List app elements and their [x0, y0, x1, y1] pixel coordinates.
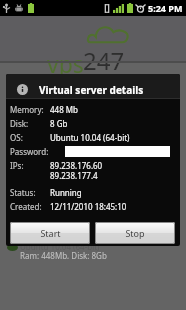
- staticText: Stop: [125, 227, 145, 239]
- staticText: Virtual server details: [39, 83, 144, 97]
- staticText: Ubuntu 10.04 (64-bit): [50, 132, 130, 143]
- button[interactable]: Stop: [95, 222, 175, 244]
- staticText: 247: [83, 44, 125, 77]
- staticText: Running: [50, 187, 82, 198]
- staticText: 448 Mb: [50, 104, 78, 115]
- staticText: Status:: [10, 187, 36, 198]
- staticText: Created:: [10, 201, 42, 212]
- staticText: 89.238.177.4: [50, 170, 98, 181]
- staticText: Start: [40, 227, 61, 239]
- staticText: vps: [47, 48, 84, 79]
- staticText: Password:: [10, 146, 49, 157]
- staticText: IPs:: [10, 160, 24, 171]
- staticText: Ram: 448Mb, Disk: 8Gb: [20, 250, 107, 261]
- staticText: Ubuntu 10.04 (64-bit): [20, 241, 100, 252]
- staticText: 5:24 PM: [148, 2, 183, 14]
- staticText: Memory:: [10, 104, 44, 115]
- staticText: 8 Gb: [50, 118, 68, 129]
- staticText: 89.238.176.60: [50, 160, 103, 171]
- staticText: 12/11/2010 18:45:10: [50, 201, 127, 212]
- button[interactable]: Start: [10, 222, 90, 244]
- staticText: OS:: [10, 132, 23, 143]
- staticText: Disk:: [10, 118, 29, 129]
